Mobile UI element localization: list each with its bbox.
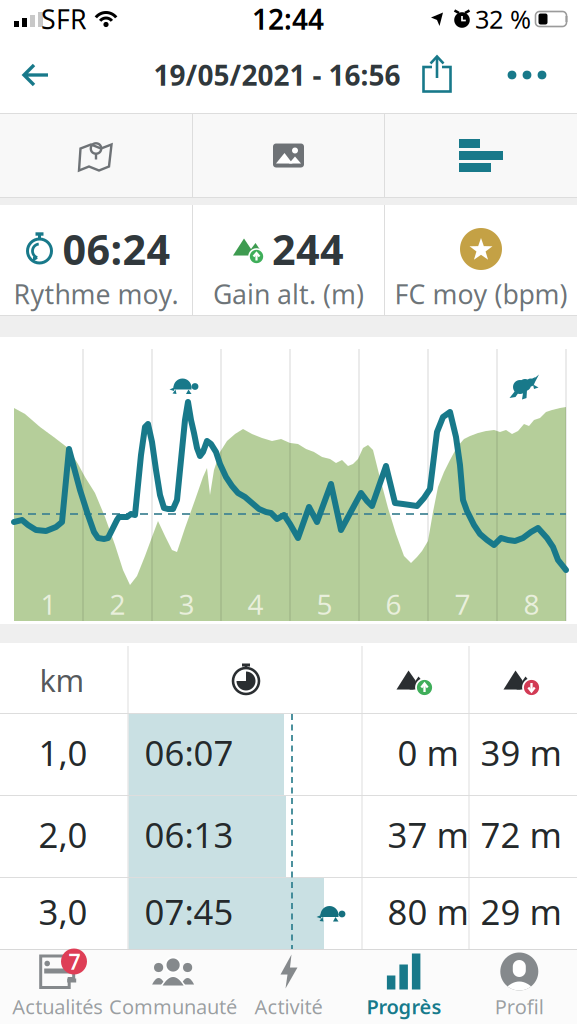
staticText: 29 m bbox=[480, 888, 561, 934]
staticText: 19/05/2021 - 16:56 bbox=[153, 56, 400, 94]
staticText: 06:07 bbox=[144, 729, 233, 775]
staticText: FC moy (bpm) bbox=[394, 276, 567, 312]
staticText: 7 bbox=[68, 947, 80, 976]
staticText: 39 m bbox=[480, 729, 561, 775]
staticText: Profil bbox=[495, 993, 544, 1020]
staticText: 0 m bbox=[397, 729, 458, 775]
staticText: Rythme moy. bbox=[13, 276, 178, 312]
staticText: 06:24 bbox=[62, 222, 170, 276]
staticText: 2,0 bbox=[38, 811, 87, 857]
button[interactable]: Actualités bbox=[0, 949, 115, 1024]
staticText: 12:44 bbox=[252, 0, 324, 38]
button[interactable]: Photos bbox=[193, 114, 384, 197]
staticText: 1,0 bbox=[38, 729, 87, 775]
staticText: Actualités bbox=[12, 993, 103, 1020]
staticText: 6 bbox=[385, 585, 401, 623]
button[interactable]: Communauté bbox=[115, 949, 231, 1024]
staticText: 1 bbox=[40, 585, 56, 623]
button[interactable]: Statistics bbox=[385, 114, 577, 197]
staticText: 8 bbox=[523, 585, 539, 623]
button[interactable]: Activité bbox=[231, 949, 346, 1024]
staticText: 244 bbox=[272, 222, 344, 276]
staticText: 5 bbox=[316, 585, 332, 623]
staticText: 3,0 bbox=[38, 888, 87, 934]
button[interactable]: More bbox=[501, 53, 553, 97]
button[interactable]: Map bbox=[0, 114, 192, 197]
staticText: SFR bbox=[41, 1, 87, 37]
staticText: Gain alt. (m) bbox=[213, 276, 364, 312]
staticText: km bbox=[39, 660, 84, 700]
staticText: 37 m bbox=[387, 811, 468, 857]
staticText: 32 % bbox=[475, 2, 531, 36]
staticText: 4 bbox=[247, 585, 263, 623]
staticText: Communauté bbox=[109, 993, 237, 1020]
button[interactable]: Share bbox=[413, 50, 461, 98]
staticText: Activité bbox=[254, 993, 322, 1020]
staticText: 7 bbox=[454, 585, 470, 623]
button[interactable]: Profil bbox=[462, 949, 577, 1024]
staticText: 06:13 bbox=[144, 811, 233, 857]
staticText: 3 bbox=[178, 585, 194, 623]
staticText: 07:45 bbox=[144, 888, 233, 934]
staticText: 72 m bbox=[480, 811, 561, 857]
button[interactable]: Progrès bbox=[346, 949, 462, 1024]
button[interactable]: Back bbox=[12, 53, 60, 97]
staticText: 80 m bbox=[387, 888, 468, 934]
staticText: Progrès bbox=[366, 993, 441, 1020]
staticText: 2 bbox=[109, 585, 125, 623]
